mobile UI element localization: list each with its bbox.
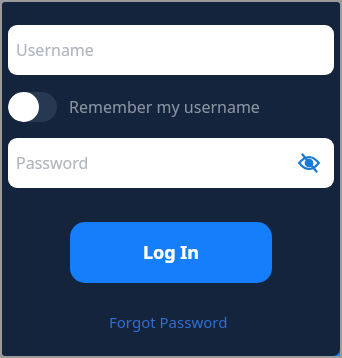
staticText: Password xyxy=(16,152,89,174)
button[interactable]: Password xyxy=(8,138,334,188)
button[interactable]: Forgot Password xyxy=(109,312,228,332)
staticText: Forgot Password xyxy=(109,312,228,332)
button[interactable]: Username xyxy=(8,25,334,75)
staticText: Username xyxy=(16,39,94,61)
staticText: Log In xyxy=(143,240,200,265)
button[interactable]: Log In xyxy=(70,222,272,283)
staticText: Remember my username xyxy=(69,96,260,118)
button[interactable] xyxy=(8,92,57,122)
